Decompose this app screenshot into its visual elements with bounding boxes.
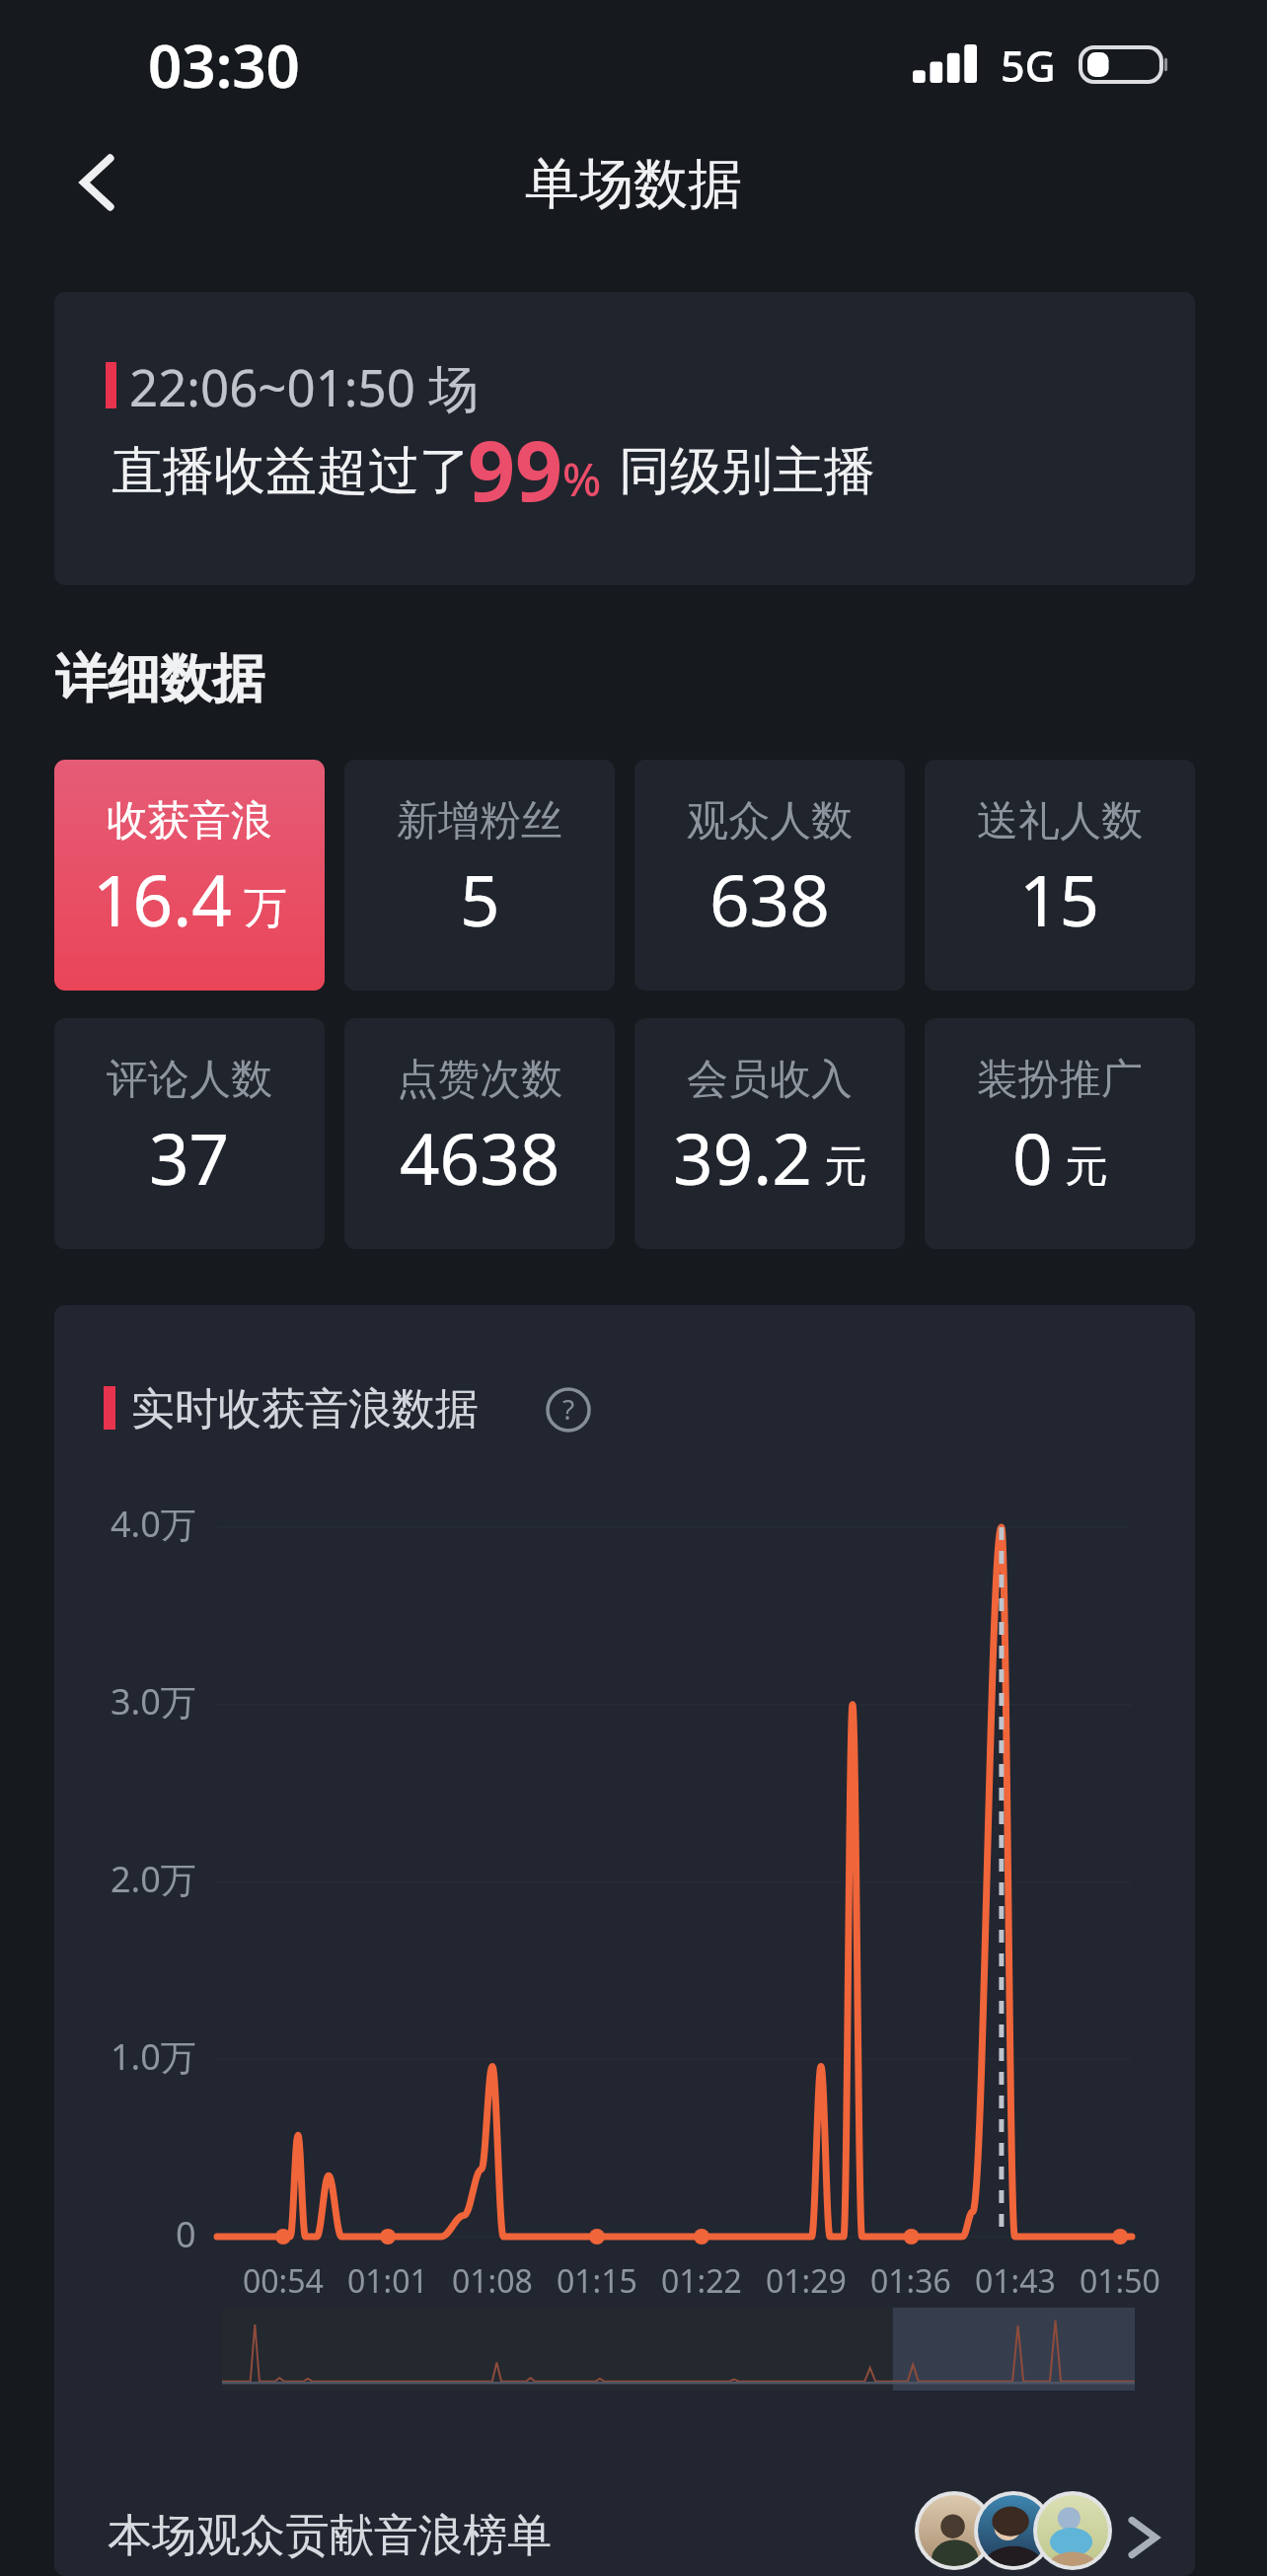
staticText: 单场数据 <box>525 150 742 218</box>
staticText: 直播收益超过了 <box>112 439 471 504</box>
staticText: 4638 <box>400 1110 560 1206</box>
button[interactable]: 评论人数 <box>54 1018 325 1249</box>
staticText: 16.4 <box>93 851 232 947</box>
staticText: 99 <box>468 412 563 525</box>
button[interactable]: 22:06~01:50 场 <box>54 292 1195 585</box>
staticText: % <box>562 448 602 510</box>
staticText: 15 <box>1019 851 1100 947</box>
staticText: 22:06~01:50 场 <box>129 352 480 421</box>
staticText: 01:50 <box>1080 2259 1160 2303</box>
staticText: 详细数据 <box>55 646 264 712</box>
staticText: 实时收获音浪数据 <box>131 1382 479 1436</box>
staticText: 5G <box>1001 37 1056 95</box>
staticText: 评论人数 <box>107 1054 272 1106</box>
staticText: 01:22 <box>661 2259 742 2303</box>
staticText: 点赞次数 <box>397 1054 562 1106</box>
staticText: 收获音浪 <box>107 795 272 847</box>
staticText: 5 <box>460 851 500 947</box>
button[interactable]: 送礼人数 <box>925 760 1195 991</box>
staticText: 3.0万 <box>111 1677 196 1726</box>
staticText: 新增粉丝 <box>397 795 562 847</box>
staticText: 1.0万 <box>111 2032 196 2081</box>
button[interactable]: 会员收入 <box>634 1018 905 1249</box>
staticText: 01:15 <box>557 2259 637 2303</box>
button[interactable]: Help <box>546 1387 591 1433</box>
staticText: 装扮推广 <box>977 1054 1143 1106</box>
staticText: 39.2 <box>673 1110 812 1206</box>
staticText: 会员收入 <box>687 1054 853 1106</box>
staticText: 4.0万 <box>111 1500 196 1548</box>
staticText: 01:36 <box>870 2259 951 2303</box>
staticText: 2.0万 <box>111 1855 196 1903</box>
button[interactable]: 收获音浪 <box>54 760 325 991</box>
button[interactable]: 新增粉丝 <box>344 760 615 991</box>
staticText: 03:30 <box>148 25 300 106</box>
button[interactable]: Back <box>55 141 138 224</box>
staticText: 本场观众贡献音浪榜单 <box>108 2508 552 2564</box>
staticText: 元 <box>1065 1140 1108 1194</box>
button[interactable]: 观众人数 <box>634 760 905 991</box>
staticText: 01:43 <box>975 2259 1056 2303</box>
staticText: 01:01 <box>347 2259 428 2303</box>
staticText: ? <box>562 1390 575 1428</box>
staticText: 638 <box>709 851 830 947</box>
staticText: 送礼人数 <box>977 795 1143 847</box>
staticText: 万 <box>244 881 287 935</box>
staticText: 元 <box>824 1140 867 1194</box>
staticText: 01:29 <box>766 2259 847 2303</box>
button[interactable]: 装扮推广 <box>925 1018 1195 1249</box>
staticText: 观众人数 <box>687 795 853 847</box>
staticText: 37 <box>149 1110 230 1206</box>
staticText: 01:08 <box>452 2259 533 2303</box>
staticText: 0 <box>176 2210 196 2258</box>
staticText: 00:54 <box>243 2259 324 2303</box>
button[interactable]: 点赞次数 <box>344 1018 615 1249</box>
staticText: 0 <box>1012 1110 1053 1206</box>
button[interactable]: 本场观众贡献音浪榜单 <box>54 2437 1195 2576</box>
staticText: 同级别主播 <box>619 439 875 504</box>
